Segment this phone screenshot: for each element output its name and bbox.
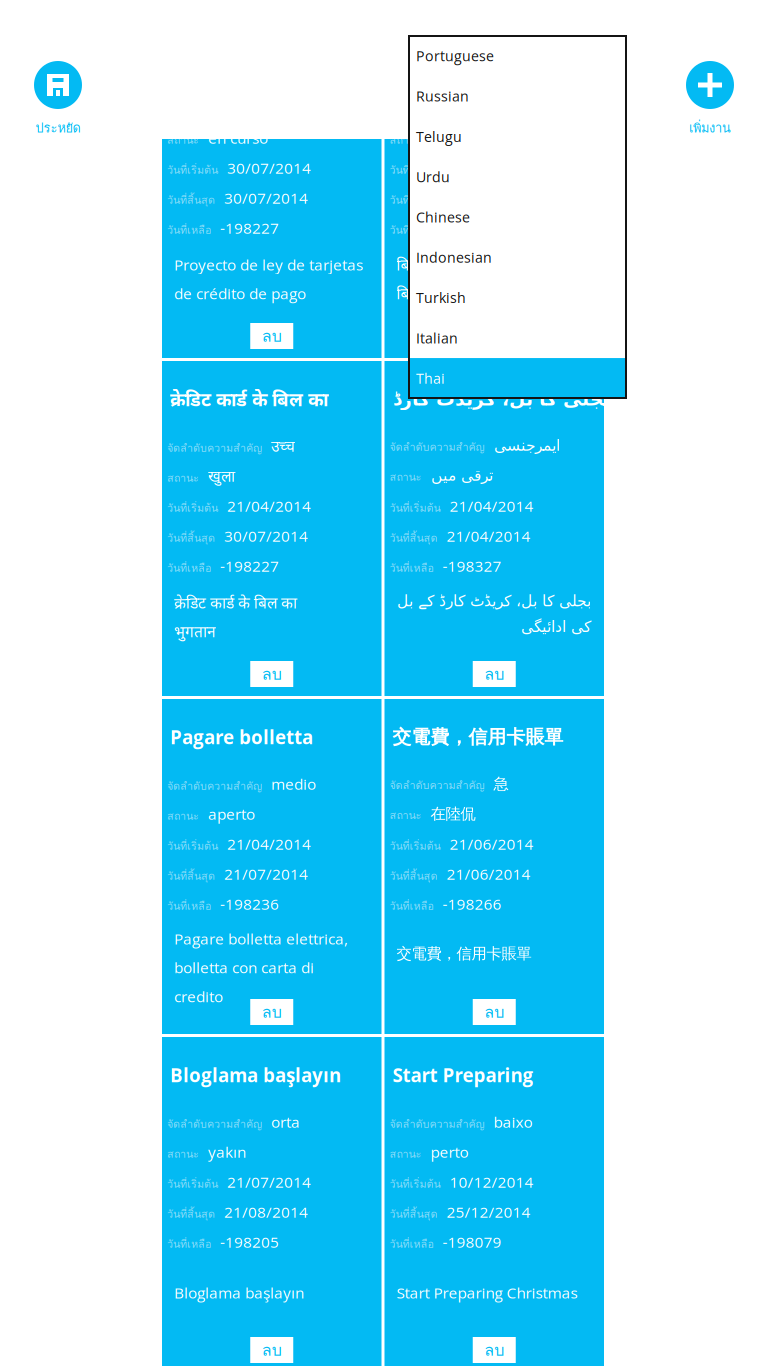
staticText: สถานะ	[389, 807, 421, 824]
staticText: -198236	[220, 893, 279, 914]
staticText: -198266	[442, 893, 501, 914]
staticText: วันที่เริ่มต้น	[389, 838, 440, 855]
staticText: วันที่สิ้นสุด	[389, 192, 437, 209]
staticText: วันที่เริ่มต้น	[167, 500, 218, 517]
staticText: 21/04/2014	[227, 495, 311, 516]
staticText: 30/07/2014	[224, 187, 308, 208]
staticText: Start Preparing	[392, 1062, 533, 1088]
staticText: 21/04/2014	[227, 833, 311, 854]
staticText: ایمرجنسی	[493, 436, 559, 454]
staticText: उच्च	[271, 435, 295, 456]
staticText: 21/06/2014	[449, 833, 533, 854]
staticText: -198227	[220, 555, 279, 576]
staticText: วันที่เหลือ	[167, 898, 211, 915]
staticText: क्रेडिट कार्ड के बिल का	[170, 386, 328, 412]
staticText: Russian	[416, 86, 469, 106]
button[interactable]: ลบ	[250, 661, 293, 687]
staticText: สถานะ	[167, 808, 199, 825]
staticText: ลบ	[484, 661, 504, 687]
staticText: -198079	[442, 1231, 501, 1252]
staticText: Turkish	[416, 288, 466, 307]
staticText: -198227	[220, 217, 279, 238]
staticText: เพิ่มงาน	[689, 118, 731, 138]
staticText: 交電費，信用卡賬單	[396, 944, 531, 963]
button[interactable]: Chinese	[409, 197, 626, 237]
staticText: วันที่สิ้นสุด	[389, 1206, 437, 1223]
staticText: สถานะ	[167, 470, 199, 487]
button[interactable]: ลบ	[250, 1337, 293, 1363]
staticText: Pagare bolletta	[170, 724, 313, 750]
staticText: 21/07/2014	[224, 863, 308, 884]
staticText: ลบ	[262, 661, 282, 687]
staticText: จัดลำดับความสำคัญ	[167, 778, 262, 795]
staticText: 10/12/2014	[449, 1171, 533, 1192]
staticText: ลบ	[262, 1337, 282, 1363]
staticText: วันที่สิ้นสุด	[167, 530, 215, 547]
staticText: วันที่สิ้นสุด	[167, 1206, 215, 1223]
button[interactable]: Italian	[409, 318, 626, 358]
button[interactable]: Save	[0, 61, 116, 138]
button[interactable]: Turkish	[409, 277, 626, 318]
button[interactable]: Thai	[409, 358, 626, 398]
button[interactable]: Add task	[652, 61, 768, 138]
button[interactable]: Russian	[409, 76, 626, 116]
staticText: क्रेडिट कार्ड के बिल का भुगतान	[174, 592, 297, 642]
staticText: بجلی کا بل، کریڈٹ کارڈ کے بل کی ادائیگی	[396, 592, 590, 636]
staticText: ลบ	[484, 1337, 504, 1363]
button[interactable]: ลบ	[473, 1337, 516, 1363]
button[interactable]: Urdu	[409, 156, 626, 197]
staticText: Urdu	[416, 167, 450, 186]
button[interactable]: Portuguese	[409, 36, 626, 76]
staticText: Proyecto de ley de tarjetas de crédito d…	[174, 254, 363, 304]
staticText: ประหยัด	[35, 118, 80, 138]
staticText: วันที่เริ่มต้น	[167, 838, 218, 855]
staticText: สถานะ	[389, 468, 421, 485]
button[interactable]: ลบ	[250, 999, 293, 1025]
staticText: ลบ	[262, 323, 282, 349]
button[interactable]: Telugu	[409, 116, 626, 156]
staticText: Bloglama başlayın	[174, 1282, 304, 1303]
staticText: -198327	[442, 555, 501, 576]
button[interactable]: ลบ	[250, 323, 293, 349]
staticText: खुला	[430, 127, 457, 148]
staticText: Chinese	[416, 207, 470, 227]
staticText: 在陸侃	[430, 804, 475, 824]
button[interactable]: Indonesian	[409, 237, 626, 277]
staticText: ترقی میں	[430, 466, 492, 484]
button[interactable]: ลบ	[473, 661, 516, 687]
staticText: วันที่เหลือ	[389, 222, 433, 239]
staticText: Telugu	[416, 127, 462, 146]
staticText: Thai	[416, 369, 445, 388]
staticText: 21/06/2014	[446, 863, 530, 884]
staticText: วันที่สิ้นสุด	[389, 530, 437, 547]
staticText: -198205	[220, 1231, 279, 1252]
staticText: Bloglama başlayın	[170, 1062, 341, 1088]
staticText: วันที่เริ่มต้น	[389, 1176, 440, 1193]
staticText: खुला	[208, 465, 235, 486]
staticText: 21/04/2014	[449, 495, 533, 516]
staticText: วันที่สิ้นสุด	[389, 868, 437, 885]
staticText: วันที่เหลือ	[167, 222, 211, 239]
staticText: 21/04/2014	[446, 525, 530, 546]
staticText: 急	[493, 774, 508, 794]
staticText: วันที่เหลือ	[389, 1236, 433, 1253]
staticText: Pagare bolletta elettrica, bolletta con …	[174, 928, 348, 1007]
button[interactable]: ลบ	[473, 999, 516, 1025]
staticText: medio	[271, 773, 316, 794]
staticText: วันที่เหลือ	[389, 560, 433, 577]
staticText: สถานะ	[167, 1146, 199, 1163]
staticText: วันที่สิ้นสุด	[167, 192, 215, 209]
staticText: बिजली का बिल, क्रेडिट	[392, 48, 555, 74]
staticText: วันที่เริ่มต้น	[389, 500, 440, 517]
staticText: จัดลำดับความสำคัญ	[167, 440, 262, 457]
staticText: orta	[271, 1111, 300, 1132]
staticText: baixo	[493, 1111, 532, 1132]
staticText: จัดลำดับความสำคัญ	[389, 102, 484, 119]
